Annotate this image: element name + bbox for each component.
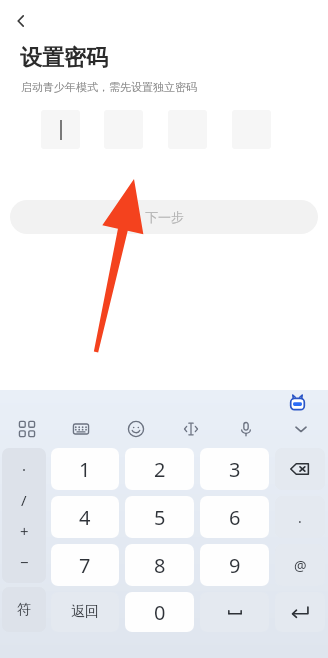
button[interactable]: 0 (125, 592, 194, 632)
staticText: 9 (229, 552, 241, 579)
button[interactable]: Apps (0, 412, 54, 445)
staticText: / (21, 490, 27, 510)
staticText: − (20, 552, 29, 572)
button[interactable]: Symbols (2, 448, 46, 583)
staticText: 2 (154, 456, 166, 483)
staticText: 6 (229, 504, 241, 531)
button[interactable]: . (275, 496, 325, 538)
staticText: 下一步 (145, 209, 184, 225)
button[interactable]: Hide keyboard (273, 412, 328, 445)
staticText: · (22, 459, 27, 479)
staticText: @ (294, 556, 307, 575)
button[interactable]: Keyboard (54, 412, 108, 445)
staticText: 7 (79, 552, 91, 579)
button[interactable]: @ (275, 544, 325, 586)
button[interactable]: Password digit 1 (41, 110, 80, 149)
staticText: 1 (79, 456, 91, 483)
button[interactable]: 3 (200, 448, 269, 490)
staticText: 5 (154, 504, 166, 531)
staticText: 0 (154, 599, 166, 626)
staticText: 返回 (71, 603, 99, 621)
button[interactable]: Backspace (275, 448, 325, 490)
button[interactable]: 9 (200, 544, 269, 586)
staticText: 4 (79, 504, 91, 531)
button[interactable]: 4 (51, 496, 119, 538)
staticText: 符 (17, 601, 31, 619)
button[interactable]: Back (4, 4, 38, 38)
button[interactable]: Space (200, 592, 269, 632)
button[interactable]: 6 (200, 496, 269, 538)
button[interactable]: Assistant (288, 393, 306, 411)
button[interactable]: 2 (125, 448, 194, 490)
staticText: . (298, 508, 302, 527)
button[interactable]: 符 (2, 587, 46, 632)
button[interactable]: 下一步 (10, 200, 318, 234)
staticText: 3 (229, 456, 241, 483)
button[interactable]: Text edit (163, 412, 218, 445)
button[interactable]: 8 (125, 544, 194, 586)
staticText: + (20, 521, 29, 541)
staticText: 启动青少年模式，需先设置独立密码 (21, 80, 197, 94)
button[interactable]: 返回 (51, 592, 119, 632)
staticText: 设置密码 (20, 44, 108, 72)
button[interactable]: Voice input (218, 412, 273, 445)
button[interactable]: 1 (51, 448, 119, 490)
button[interactable]: Emoji (108, 412, 163, 445)
button[interactable]: Enter (275, 592, 325, 632)
staticText: 8 (154, 552, 166, 579)
button[interactable]: 5 (125, 496, 194, 538)
button[interactable]: 7 (51, 544, 119, 586)
